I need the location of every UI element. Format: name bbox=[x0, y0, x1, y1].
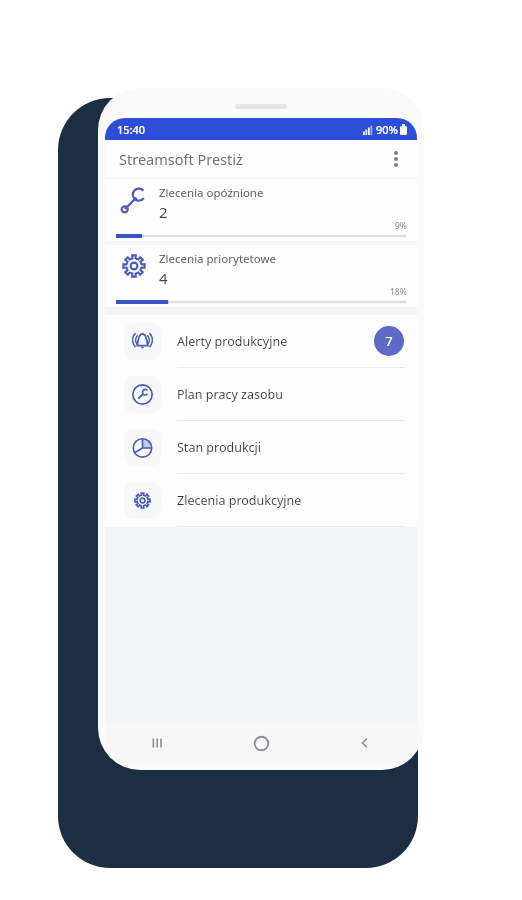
staticText: 2 bbox=[159, 202, 168, 222]
staticText: Streamsoft Prestiż bbox=[119, 149, 243, 169]
button[interactable]: Alerty produkcyjne bbox=[105, 315, 417, 367]
button[interactable]: Home bbox=[209, 723, 313, 763]
button[interactable]: Recents bbox=[105, 723, 209, 763]
button[interactable]: Zlecenia opóźnione bbox=[105, 179, 417, 241]
button[interactable]: Back bbox=[313, 723, 417, 763]
button[interactable]: Zlecenia produkcyjne bbox=[105, 474, 417, 526]
staticText: Zlecenia priorytetowe bbox=[159, 251, 276, 267]
staticText: 4 bbox=[159, 268, 168, 288]
staticText: 18% bbox=[390, 286, 407, 298]
button[interactable]: More options bbox=[379, 142, 413, 176]
staticText: Plan pracy zasobu bbox=[177, 386, 405, 403]
staticText: Zlecenia produkcyjne bbox=[177, 492, 405, 509]
button[interactable]: Plan pracy zasobu bbox=[105, 368, 417, 420]
staticText: 15:40 bbox=[117, 122, 146, 137]
staticText: Zlecenia opóźnione bbox=[159, 185, 264, 201]
staticText: 90% bbox=[376, 122, 398, 137]
button[interactable]: Zlecenia priorytetowe bbox=[105, 245, 417, 307]
staticText: 9% bbox=[395, 220, 407, 232]
button[interactable]: Stan produkcji bbox=[105, 421, 417, 473]
staticText: Stan produkcji bbox=[177, 439, 405, 456]
staticText: 7 bbox=[385, 332, 393, 350]
staticText: Alerty produkcyjne bbox=[177, 333, 374, 350]
